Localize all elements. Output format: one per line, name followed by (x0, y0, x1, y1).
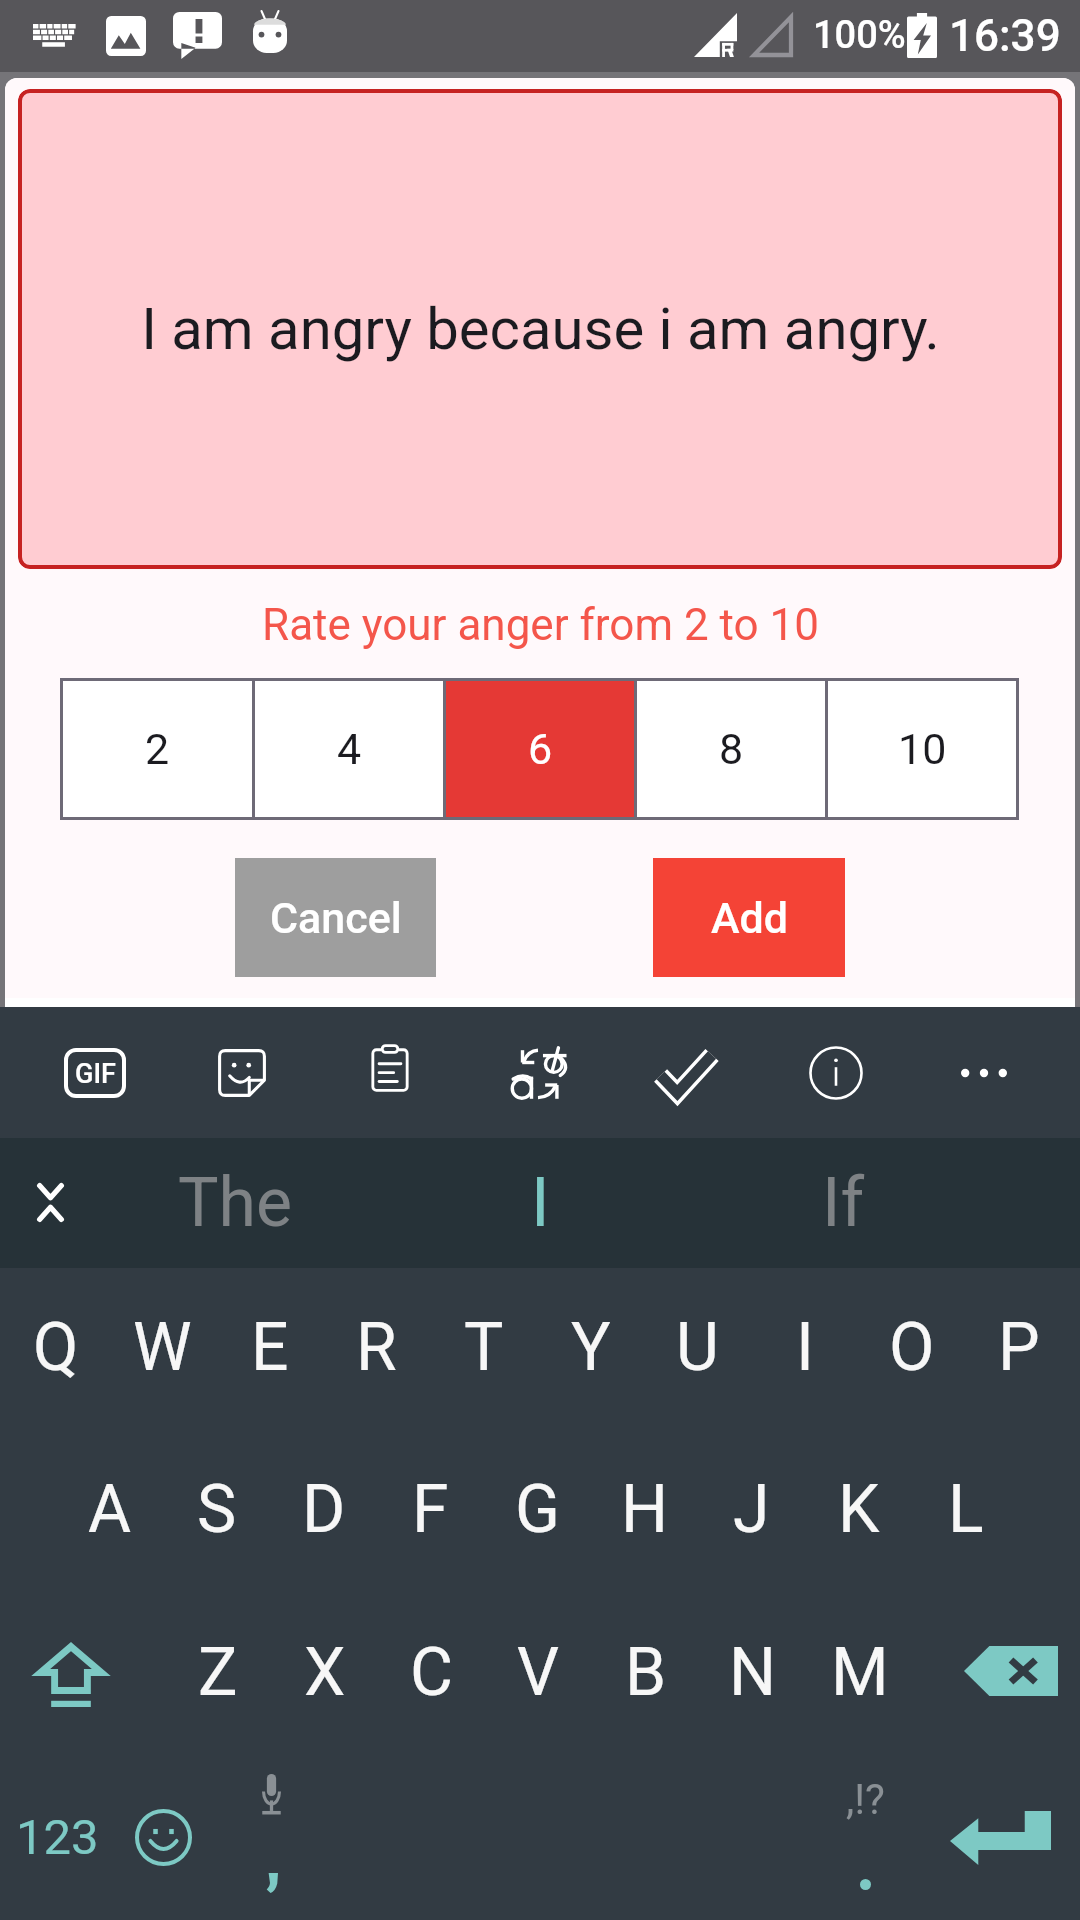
button[interactable]: Q (2, 1264, 109, 1426)
button[interactable]: I (390, 1138, 690, 1268)
staticText: T (464, 1309, 504, 1386)
staticText: V (517, 1634, 560, 1711)
button[interactable]: Cancel (235, 858, 436, 977)
button[interactable]: The (85, 1138, 385, 1268)
staticText: D (302, 1471, 346, 1548)
staticText: S (197, 1471, 237, 1548)
button[interactable]: E (216, 1264, 323, 1426)
button[interactable]: Emoji (110, 1757, 216, 1920)
staticText: 4 (337, 724, 362, 774)
staticText: 16:39 (949, 10, 1061, 62)
button[interactable]: If (693, 1138, 993, 1268)
staticText: 2 (145, 724, 170, 774)
button[interactable]: J (698, 1426, 805, 1588)
staticText: 8 (719, 724, 744, 774)
staticText: C (410, 1634, 453, 1711)
button[interactable]: 123 (0, 1757, 110, 1920)
staticText: O (889, 1309, 935, 1386)
staticText: ,!? (846, 1775, 885, 1824)
button[interactable]: Space (216, 1757, 810, 1920)
button[interactable]: 8 (637, 681, 825, 817)
button[interactable]: Z (164, 1589, 271, 1751)
button[interactable]: A (56, 1426, 163, 1588)
button[interactable]: F (377, 1426, 484, 1588)
staticText: W (133, 1309, 192, 1386)
button[interactable]: C (378, 1589, 485, 1751)
button[interactable]: Add (653, 858, 845, 977)
staticText: G (515, 1471, 560, 1548)
staticText: Z (198, 1634, 238, 1711)
button[interactable]: T (430, 1264, 537, 1426)
button[interactable]: Y (537, 1264, 644, 1426)
button[interactable]: M (806, 1589, 913, 1751)
button[interactable]: V (485, 1589, 592, 1751)
button[interactable]: O (858, 1264, 965, 1426)
staticText: F (412, 1471, 449, 1548)
button[interactable]: N (699, 1589, 806, 1751)
staticText: P (998, 1309, 1040, 1386)
button[interactable]: D (270, 1426, 377, 1588)
button[interactable]: R (323, 1264, 430, 1426)
button[interactable]: More options (922, 1007, 1046, 1138)
staticText: B (625, 1634, 667, 1711)
button[interactable]: Clipboard (328, 1007, 452, 1138)
staticText: N (729, 1634, 777, 1711)
button[interactable]: 10 (828, 681, 1016, 817)
button[interactable]: G (484, 1426, 591, 1588)
button[interactable]: H (591, 1426, 698, 1588)
button[interactable]: P (965, 1264, 1072, 1426)
staticText: J (733, 1471, 770, 1548)
button[interactable]: Enter (930, 1757, 1080, 1920)
staticText: A (88, 1471, 132, 1548)
button[interactable]: X (271, 1589, 378, 1751)
button[interactable]: Shift (0, 1589, 150, 1752)
staticText: If (822, 1163, 865, 1243)
staticText: M (831, 1634, 889, 1711)
staticText: 10 (898, 724, 947, 774)
button[interactable]: 6 (446, 681, 634, 817)
staticText: H (621, 1471, 669, 1548)
staticText: U (676, 1309, 719, 1386)
staticText: I (796, 1309, 814, 1386)
button[interactable]: Spell check (624, 1007, 748, 1138)
staticText: I am angry because i am angry. (141, 295, 940, 363)
button[interactable]: S (163, 1426, 270, 1588)
staticText: Cancel (270, 893, 402, 943)
button[interactable]: U (644, 1264, 751, 1426)
button[interactable]: Translate (476, 1007, 600, 1138)
button[interactable]: Backspace (930, 1589, 1080, 1752)
staticText: R (356, 1309, 397, 1386)
staticText: The (178, 1163, 293, 1243)
staticText: Q (33, 1309, 79, 1386)
staticText: Y (571, 1309, 611, 1386)
staticText: Add (711, 893, 788, 943)
button[interactable]: L (912, 1426, 1019, 1588)
staticText: 100% (813, 13, 906, 58)
button[interactable]: Punctuation (805, 1757, 925, 1920)
button[interactable]: B (592, 1589, 699, 1751)
button[interactable]: I am angry because i am angry. (18, 89, 1062, 569)
button[interactable]: Stickers (180, 1007, 304, 1138)
staticText: I (531, 1163, 550, 1243)
staticText: 123 (16, 1809, 99, 1866)
button[interactable]: K (805, 1426, 912, 1588)
button[interactable]: Info (774, 1007, 898, 1138)
button[interactable]: 4 (255, 681, 443, 817)
staticText: 6 (528, 724, 553, 774)
staticText: K (838, 1471, 880, 1548)
staticText: Rate your anger from 2 to 10 (262, 599, 819, 651)
button[interactable]: W (109, 1264, 216, 1426)
button[interactable]: 2 (63, 681, 252, 817)
staticText: L (948, 1471, 984, 1548)
button[interactable]: I (751, 1264, 858, 1426)
staticText: X (304, 1634, 346, 1711)
button[interactable]: GIF (33, 1007, 157, 1138)
staticText: E (251, 1309, 289, 1386)
button[interactable]: Collapse keyboard (0, 1138, 105, 1268)
staticText: GIF (75, 1058, 116, 1090)
